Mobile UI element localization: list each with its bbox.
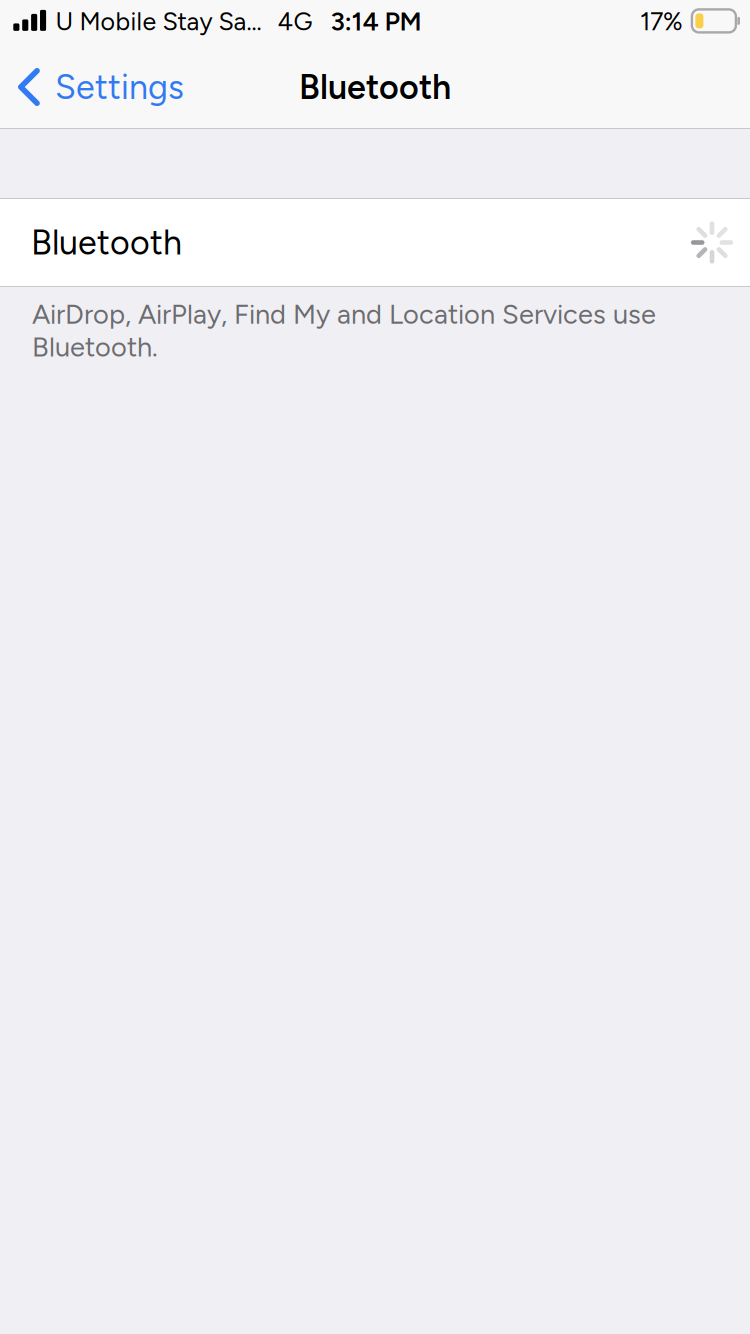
staticText: Settings	[55, 67, 184, 107]
button[interactable]: Bluetooth	[0, 199, 750, 286]
staticText: AirDrop, AirPlay, Find My and Location S…	[32, 298, 656, 363]
button[interactable]: Back to Settings	[0, 56, 200, 118]
staticText: U Mobile Stay Sa...	[55, 6, 261, 36]
staticText: Bluetooth	[31, 222, 182, 263]
staticText: 3:14 PM	[330, 6, 421, 37]
staticText: 17%	[640, 6, 683, 36]
staticText: 4G	[277, 6, 312, 36]
staticText: Bluetooth	[299, 67, 451, 107]
